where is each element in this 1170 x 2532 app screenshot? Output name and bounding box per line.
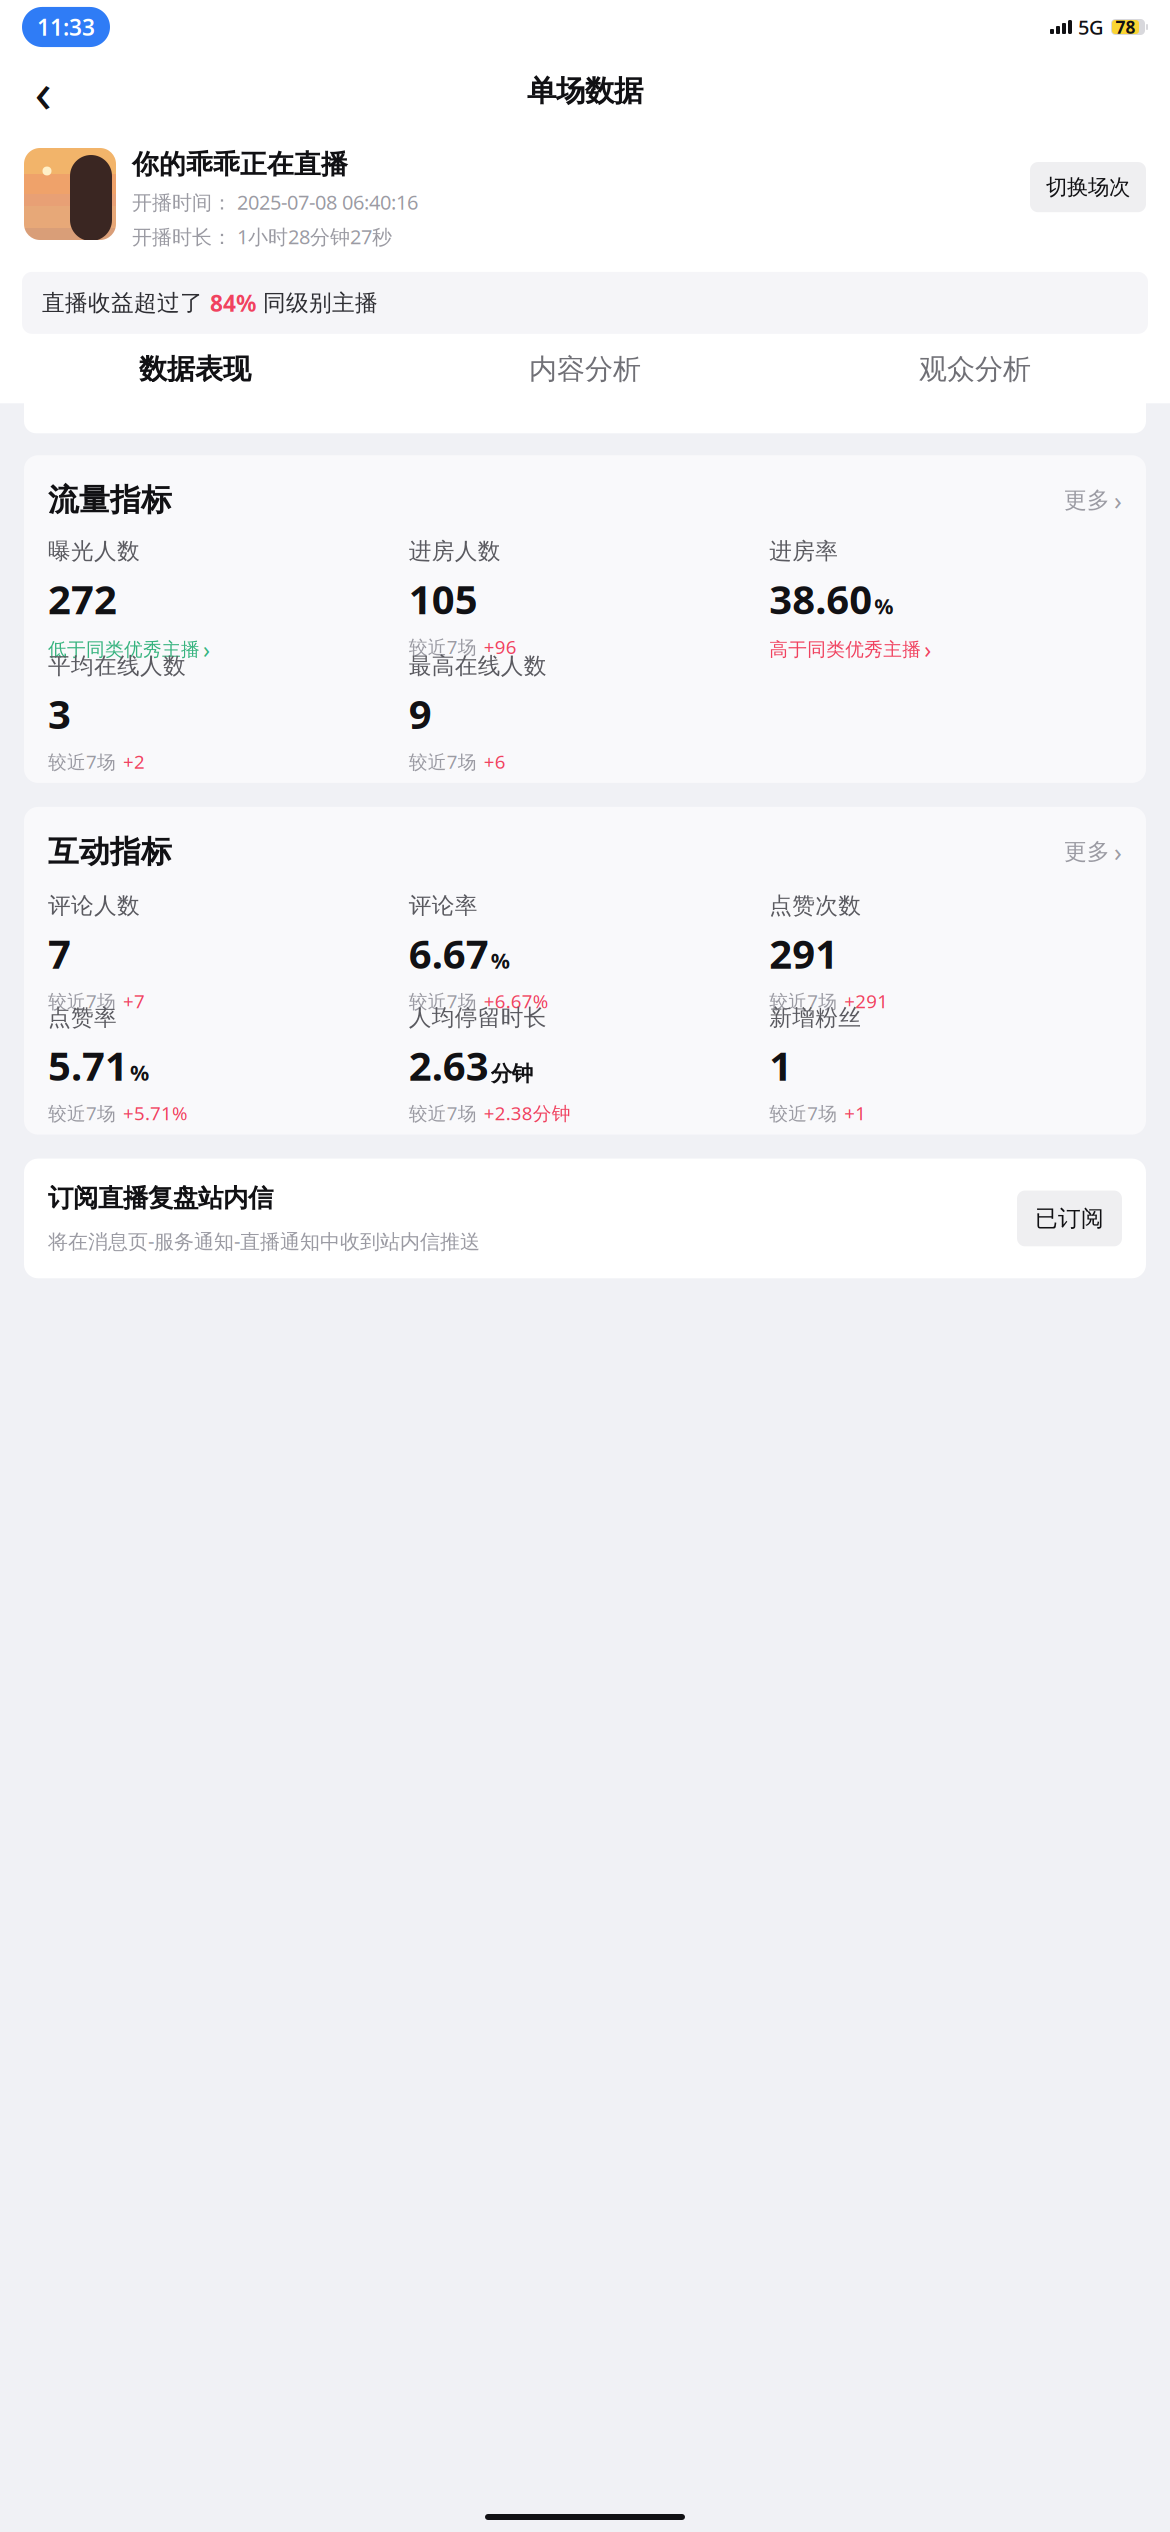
staticText: 开播时间： 2025-07-08 06:40:16 — [132, 189, 418, 215]
staticText: › — [924, 634, 931, 664]
staticText: 高于同类优秀主播 — [769, 638, 921, 661]
staticText: 7 — [48, 927, 71, 980]
staticText: 9 — [409, 687, 432, 740]
staticText: 最高在线人数 — [409, 652, 547, 680]
staticText: +291 — [844, 989, 888, 1013]
staticText: 已订阅 — [1035, 1204, 1104, 1232]
staticText: 观众分析 — [919, 352, 1031, 386]
staticText: 进房人数 — [409, 537, 501, 565]
staticText: 较近7场 — [409, 749, 477, 774]
button[interactable]: 观众分析 — [780, 352, 1170, 403]
staticText: 你的乖乖正在直播 — [132, 148, 348, 181]
button[interactable]: 更多 — [1064, 835, 1122, 868]
staticText: 切换场次 — [1046, 174, 1130, 200]
staticText: 数据表现 — [139, 352, 251, 386]
staticText: 84% — [210, 288, 256, 318]
staticText: 11:33 — [37, 12, 95, 42]
staticText: › — [1114, 835, 1122, 868]
staticText: 较近7场 — [48, 749, 116, 774]
staticText: 将在消息页-服务通知-直播通知中收到站内信推送 — [48, 1228, 480, 1254]
staticText: 低于同类优秀主播 — [48, 638, 200, 661]
staticText: 点赞次数 — [769, 892, 861, 919]
staticText: › — [203, 634, 210, 664]
staticText: 272 — [48, 572, 117, 625]
staticText: 平均在线人数 — [48, 652, 186, 680]
staticText: 直播收益超过了 — [42, 289, 210, 317]
staticText: +5.71% — [123, 1101, 188, 1125]
button[interactable]: 数据表现 — [0, 352, 390, 403]
staticText: +96 — [484, 634, 517, 659]
staticText: 进房率 — [769, 537, 838, 565]
staticText: 78 — [1115, 15, 1135, 38]
button[interactable]: 内容分析 — [390, 352, 780, 403]
staticText: 6.67 — [409, 927, 489, 980]
staticText: 较近7场 — [409, 989, 477, 1013]
staticText: › — [1114, 483, 1122, 517]
staticText: 38.60 — [769, 572, 872, 625]
staticText: +1 — [844, 1101, 866, 1125]
staticText: 较近7场 — [48, 989, 116, 1013]
staticText: +7 — [123, 989, 145, 1013]
staticText: 评论人数 — [48, 892, 140, 919]
staticText: 较近7场 — [409, 1101, 477, 1125]
button[interactable]: 低于同类优秀主播 — [48, 634, 210, 664]
staticText: 较近7场 — [769, 1101, 837, 1125]
staticText: 3 — [48, 687, 71, 740]
staticText: 评论率 — [409, 892, 478, 919]
button[interactable]: 已订阅 — [1017, 1190, 1122, 1246]
staticText: +2 — [123, 749, 145, 774]
staticText: 点赞率 — [48, 1004, 117, 1031]
staticText: 人均停留时长 — [409, 1004, 547, 1031]
button[interactable]: 切换场次 — [1030, 162, 1146, 212]
staticText: +6.67% — [484, 989, 549, 1013]
button[interactable]: 更多 — [1064, 483, 1122, 517]
staticText: 互动指标 — [48, 833, 172, 871]
staticText: 内容分析 — [529, 352, 641, 386]
staticText: 5G — [1078, 14, 1104, 40]
staticText: 曝光人数 — [48, 537, 140, 565]
staticText: 1 — [769, 1039, 792, 1092]
staticText: % — [130, 1058, 149, 1086]
staticText: 开播时长： 1小时28分钟27秒 — [132, 223, 392, 250]
staticText: 2.63 — [409, 1039, 489, 1092]
staticText: ‹ — [34, 54, 51, 128]
staticText: 订阅直播复盘站内信 — [48, 1183, 273, 1214]
button[interactable]: 高于同类优秀主播 — [769, 634, 931, 664]
staticText: +2.38分钟 — [484, 1101, 571, 1125]
staticText: +6 — [484, 749, 506, 774]
staticText: 更多 — [1064, 838, 1110, 866]
staticText: 更多 — [1064, 486, 1110, 514]
staticText: 新增粉丝 — [769, 1004, 861, 1031]
staticText: % — [491, 946, 510, 974]
staticText: 较近7场 — [409, 634, 477, 659]
staticText: 同级别主播 — [256, 289, 378, 317]
staticText: 流量指标 — [48, 481, 172, 519]
staticText: 较近7场 — [48, 1101, 116, 1125]
staticText: 较近7场 — [769, 989, 837, 1013]
staticText — [769, 652, 775, 682]
staticText: % — [874, 592, 893, 620]
staticText: 5.71 — [48, 1039, 128, 1092]
staticText: 单场数据 — [527, 73, 643, 109]
button[interactable]: 返回 — [16, 64, 70, 118]
staticText: 105 — [409, 572, 478, 625]
staticText: 分钟 — [491, 1060, 533, 1087]
staticText: 291 — [769, 927, 838, 980]
